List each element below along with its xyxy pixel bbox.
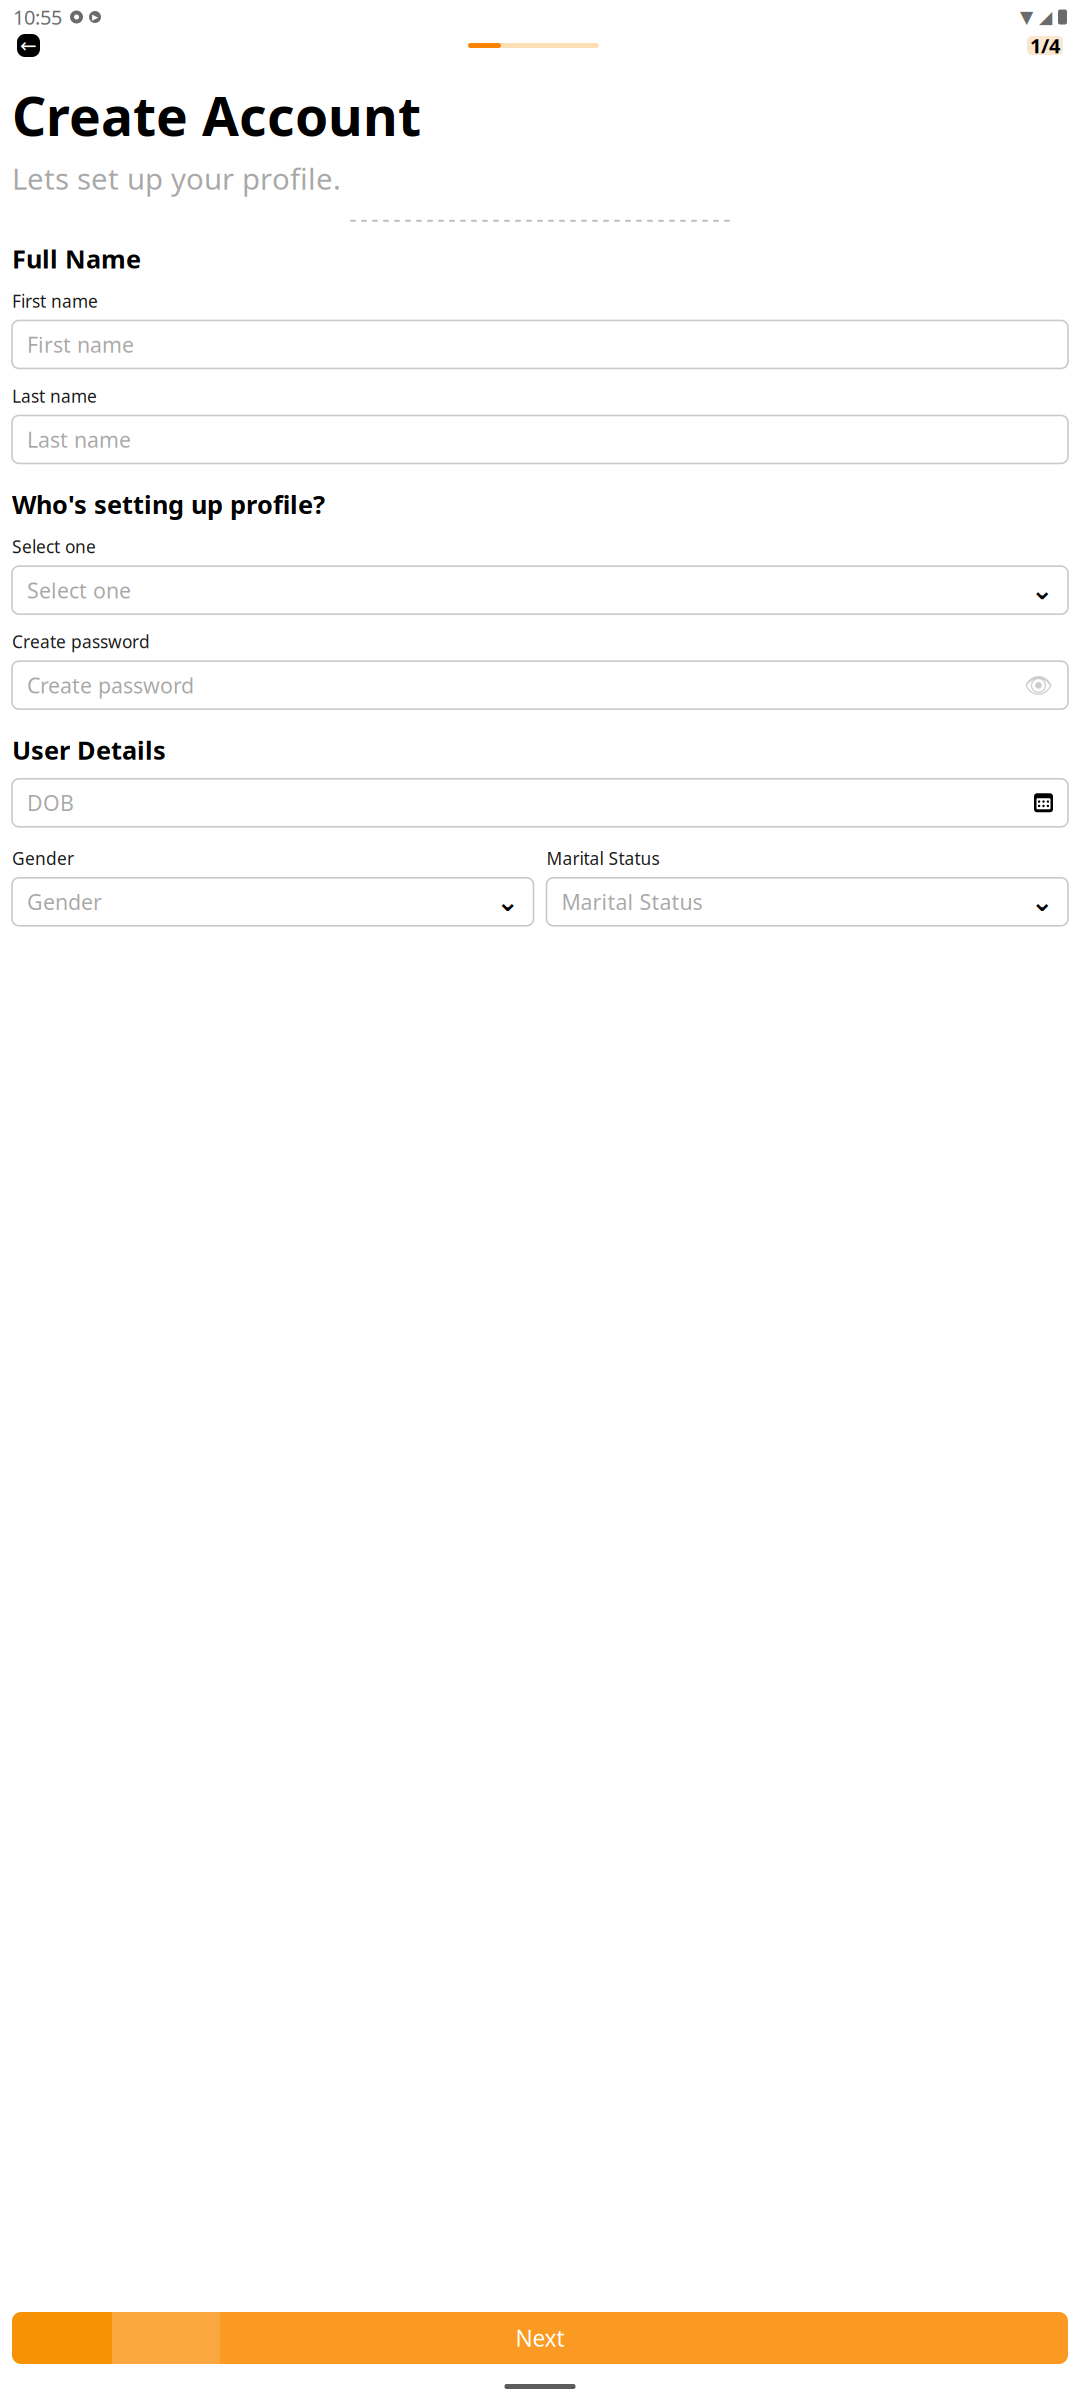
staticText: Select one <box>27 576 131 604</box>
button[interactable]: DOB <box>12 779 1068 827</box>
staticText: Who's setting up profile? <box>12 487 325 521</box>
staticText: 1/4 <box>1030 32 1060 59</box>
staticText: 10:55 <box>13 4 62 30</box>
button[interactable]: First name <box>12 320 1068 368</box>
staticText: ← <box>20 34 37 57</box>
staticText: User Details <box>12 733 166 767</box>
staticText: Gender <box>12 847 74 870</box>
button[interactable]: Create password <box>12 661 1068 709</box>
staticText: DOB <box>27 789 74 817</box>
button[interactable]: Last name <box>12 415 1068 463</box>
button[interactable]: Back <box>17 34 40 57</box>
button[interactable]: Select one <box>12 566 1068 614</box>
staticText: ▶ <box>92 12 98 22</box>
button[interactable]: Marital Status <box>546 878 1068 926</box>
staticText: ◢ <box>1039 7 1052 27</box>
staticText: Create password <box>27 671 194 699</box>
staticText: First name <box>12 289 98 312</box>
staticText: Marital Status <box>546 847 659 870</box>
staticText: Next <box>515 2323 564 2353</box>
staticText: Lets set up your profile. <box>12 159 341 198</box>
staticText: Full Name <box>12 242 141 275</box>
staticText: Last name <box>27 425 131 454</box>
staticText: Create password <box>12 630 150 653</box>
button[interactable]: Gender <box>12 878 533 926</box>
staticText: Gender <box>27 888 102 916</box>
staticText: ⌄ <box>496 887 518 917</box>
staticText: 👁 <box>1024 672 1053 698</box>
staticText: Select one <box>12 535 96 558</box>
button[interactable]: 1/4 <box>1027 36 1063 55</box>
staticText: ⌄ <box>1031 887 1053 917</box>
staticText: Create Account <box>12 80 421 151</box>
staticText: Last name <box>12 384 97 407</box>
staticText: ▼ <box>1020 7 1033 27</box>
staticText: ⌄ <box>1031 575 1053 605</box>
staticText: First name <box>27 330 134 359</box>
staticText: Marital Status <box>561 888 702 916</box>
button[interactable]: Next <box>12 2312 1068 2364</box>
